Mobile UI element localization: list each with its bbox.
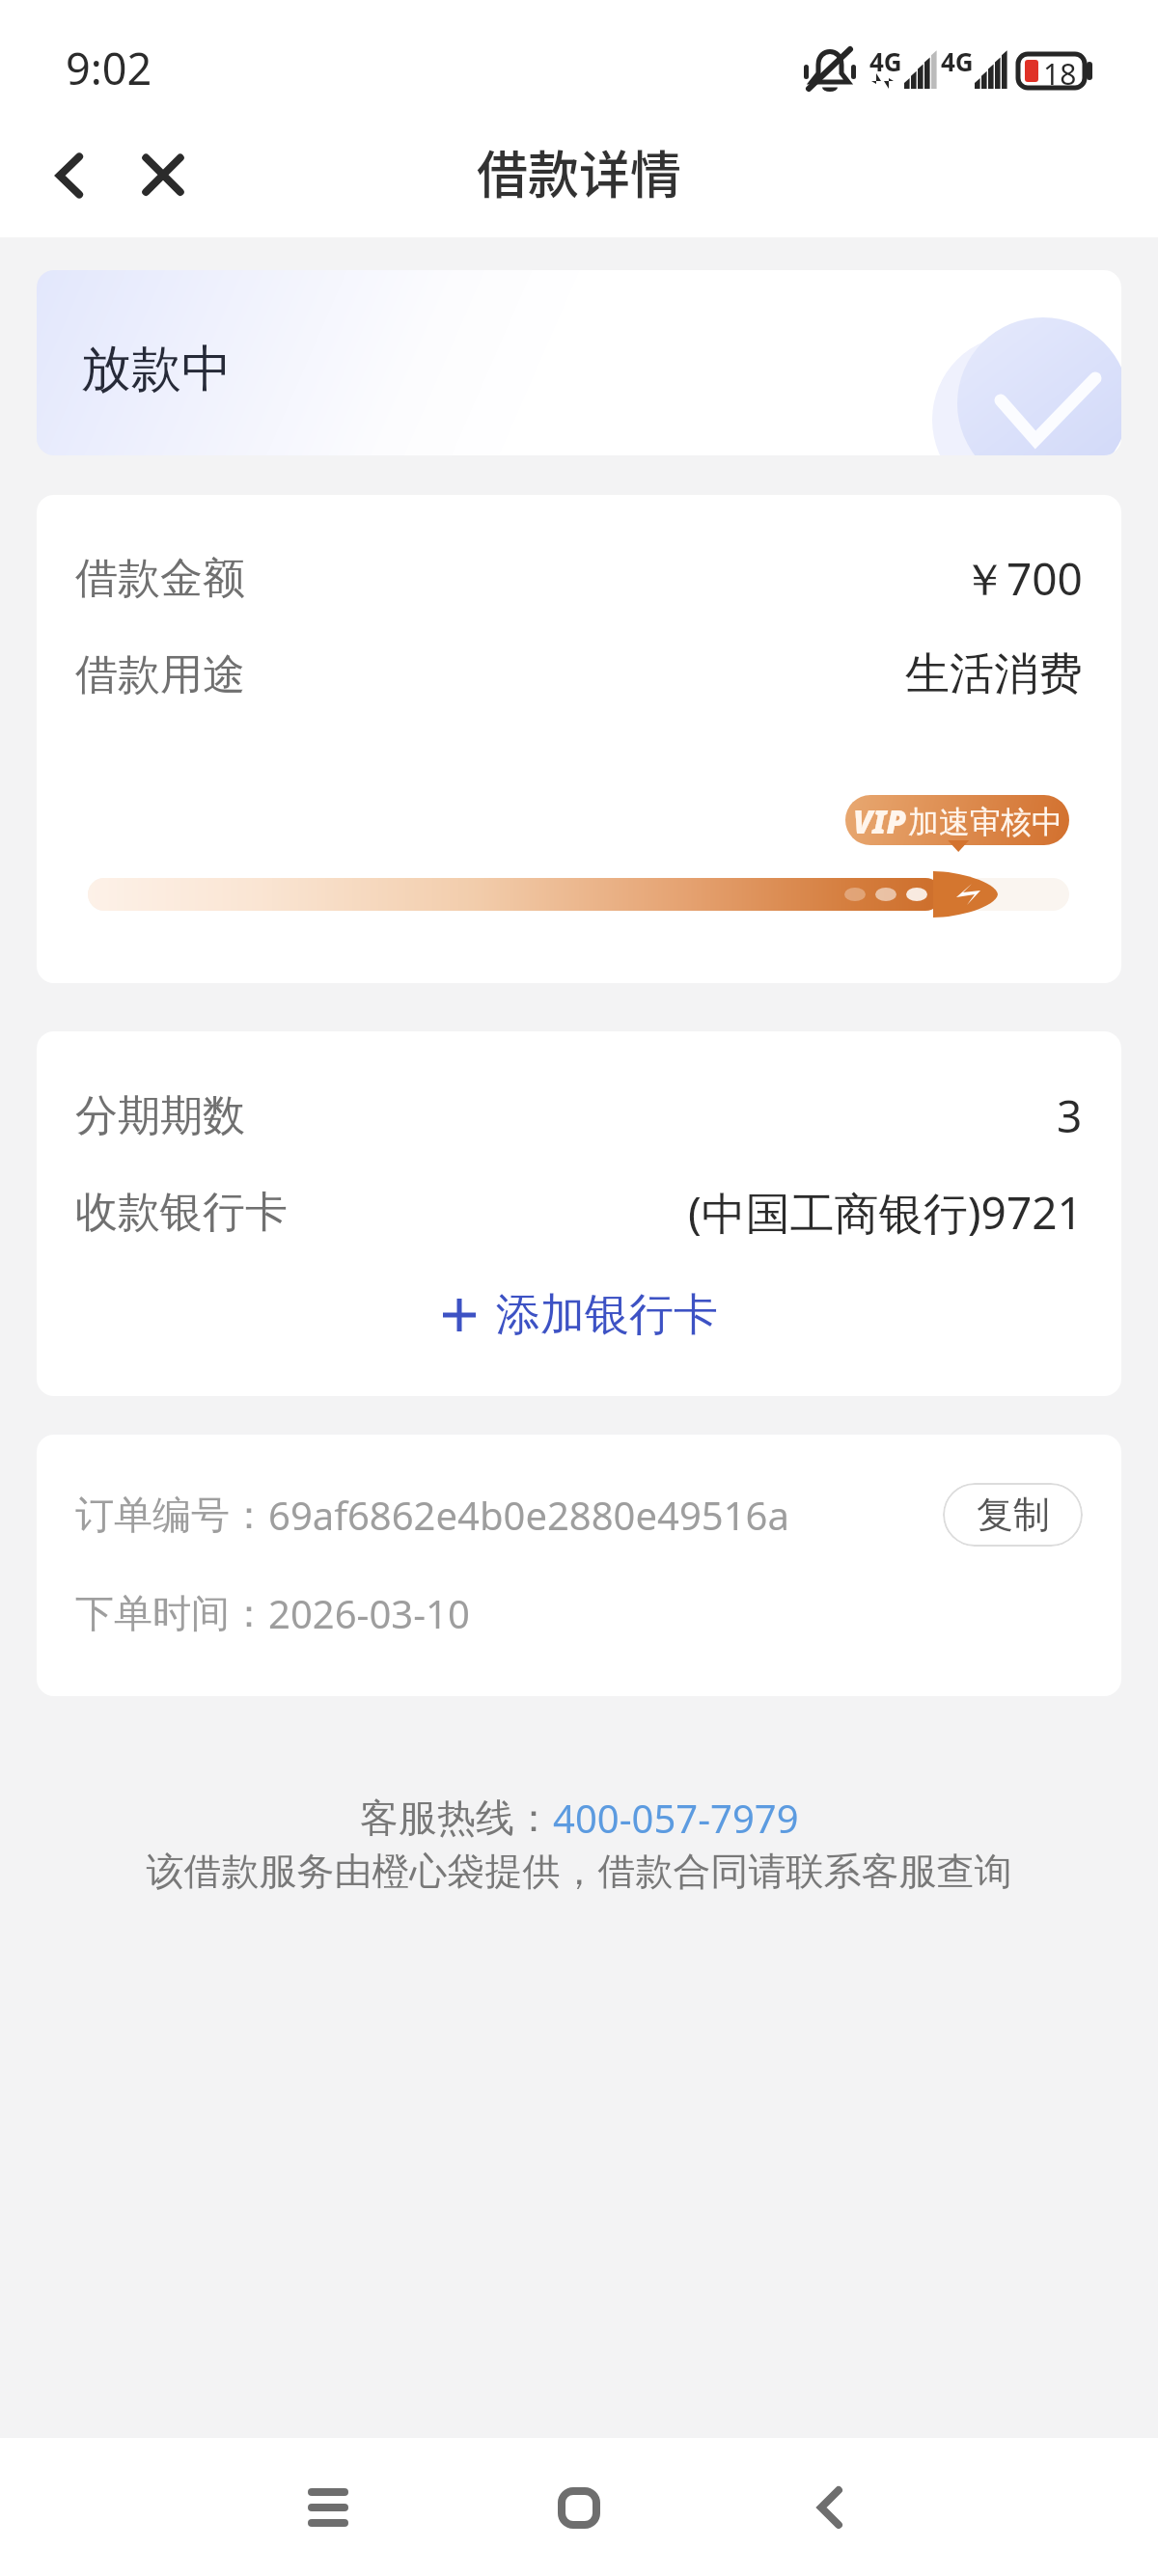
staticText: 该借款服务由橙心袋提供，借款合同请联系客服查询 (0, 1848, 1158, 1895)
staticText: 复制 (977, 1492, 1050, 1538)
button[interactable]: 400-057-7979 (553, 1792, 799, 1844)
staticText: 借款用途 (75, 648, 245, 701)
staticText: 18 (1043, 54, 1077, 94)
staticText: 订单编号： (75, 1491, 268, 1539)
staticText: 放款中 (81, 338, 232, 401)
button[interactable]: Home (526, 2454, 632, 2561)
button[interactable]: 复制 (943, 1483, 1083, 1547)
staticText: 69af6862e4b0e2880e49516a (268, 1489, 789, 1541)
staticText: 下单时间： (75, 1589, 268, 1637)
staticText: 收款银行卡 (75, 1186, 288, 1239)
staticText: 加速审核中 (908, 803, 1062, 841)
button[interactable]: 添加银行卡 (422, 1277, 737, 1353)
staticText: 客服热线： (360, 1794, 553, 1842)
staticText: 4G (869, 44, 902, 78)
staticText: 生活消费 (905, 646, 1083, 702)
staticText: 分期期数 (75, 1089, 245, 1142)
staticText: 借款金额 (75, 552, 245, 605)
staticText: 2026-03-10 (268, 1587, 470, 1639)
staticText: 4G (941, 44, 974, 78)
button[interactable]: Close (127, 140, 199, 211)
staticText: VIP (853, 800, 906, 843)
button[interactable]: Back (37, 142, 104, 209)
staticText: 借款详情 (477, 135, 681, 209)
staticText: 3 (1057, 1085, 1083, 1146)
staticText: (中国工商银行)9721 (688, 1182, 1083, 1243)
button[interactable]: Back (777, 2454, 883, 2561)
staticText: ￥700 (962, 548, 1083, 609)
staticText: 添加银行卡 (496, 1287, 718, 1343)
button[interactable]: Recent apps (275, 2454, 381, 2561)
staticText: 9:02 (66, 39, 152, 97)
